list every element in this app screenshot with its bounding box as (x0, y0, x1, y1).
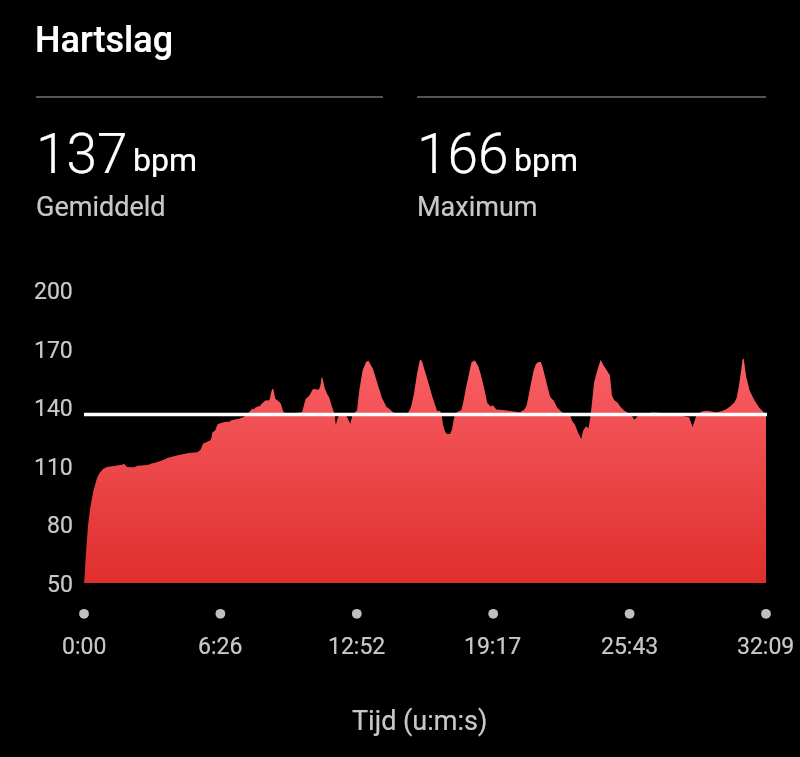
staticText: 50 (47, 571, 73, 598)
staticText: 166 (417, 122, 509, 186)
staticText: 137 (36, 122, 128, 186)
staticText: 110 (34, 454, 73, 481)
staticText: Tijd (u:m:s) (352, 705, 488, 737)
button[interactable]: 166 (417, 96, 766, 226)
staticText: 200 (34, 278, 73, 305)
staticText: 0:00 (62, 633, 107, 660)
staticText: Maximum (417, 191, 538, 223)
staticText: 6:26 (198, 633, 243, 660)
staticText: 140 (34, 395, 73, 422)
staticText: 25:43 (601, 633, 659, 660)
button[interactable]: 137 (36, 96, 383, 226)
button[interactable]: Hartslag (35, 19, 174, 61)
staticText: 12:52 (328, 633, 386, 660)
staticText: 19:17 (464, 633, 522, 660)
staticText: 170 (34, 337, 73, 364)
staticText: bpm (133, 141, 197, 179)
staticText: bpm (514, 141, 578, 179)
staticText: Hartslag (35, 19, 174, 61)
staticText: 32:09 (737, 633, 795, 660)
staticText: Gemiddeld (36, 191, 166, 223)
staticText: 80 (47, 512, 73, 539)
other: Heart rate chart (0, 0, 800, 757)
